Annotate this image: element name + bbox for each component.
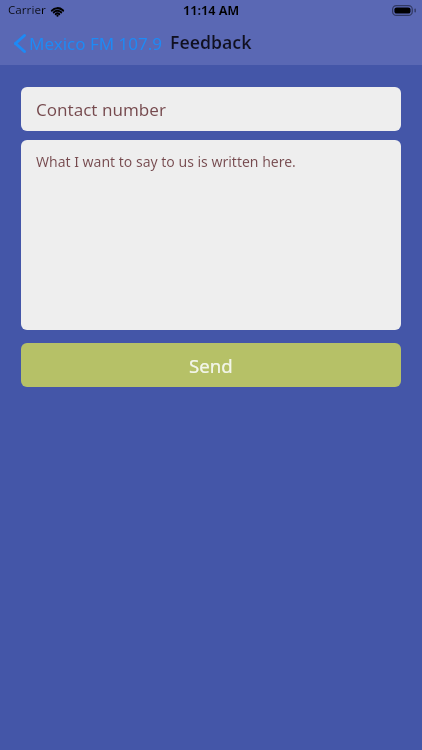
button[interactable]: What I want to say to us is written here… (21, 140, 401, 330)
other: Wi-Fi signal (50, 5, 65, 16)
staticText: Send (189, 353, 233, 378)
other: Battery full (392, 5, 416, 16)
staticText: Carrier (8, 2, 46, 18)
button[interactable]: Send (21, 343, 401, 387)
staticText: What I want to say to us is written here… (36, 152, 296, 171)
button[interactable]: Back to Mexico FM 107.9 (0, 22, 169, 65)
staticText: Mexico FM 107.9 (29, 32, 163, 55)
staticText: Feedback (170, 30, 252, 54)
staticText: 11:14 AM (183, 2, 240, 19)
staticText: Contact number (36, 98, 166, 121)
button[interactable]: Contact number (21, 87, 401, 131)
